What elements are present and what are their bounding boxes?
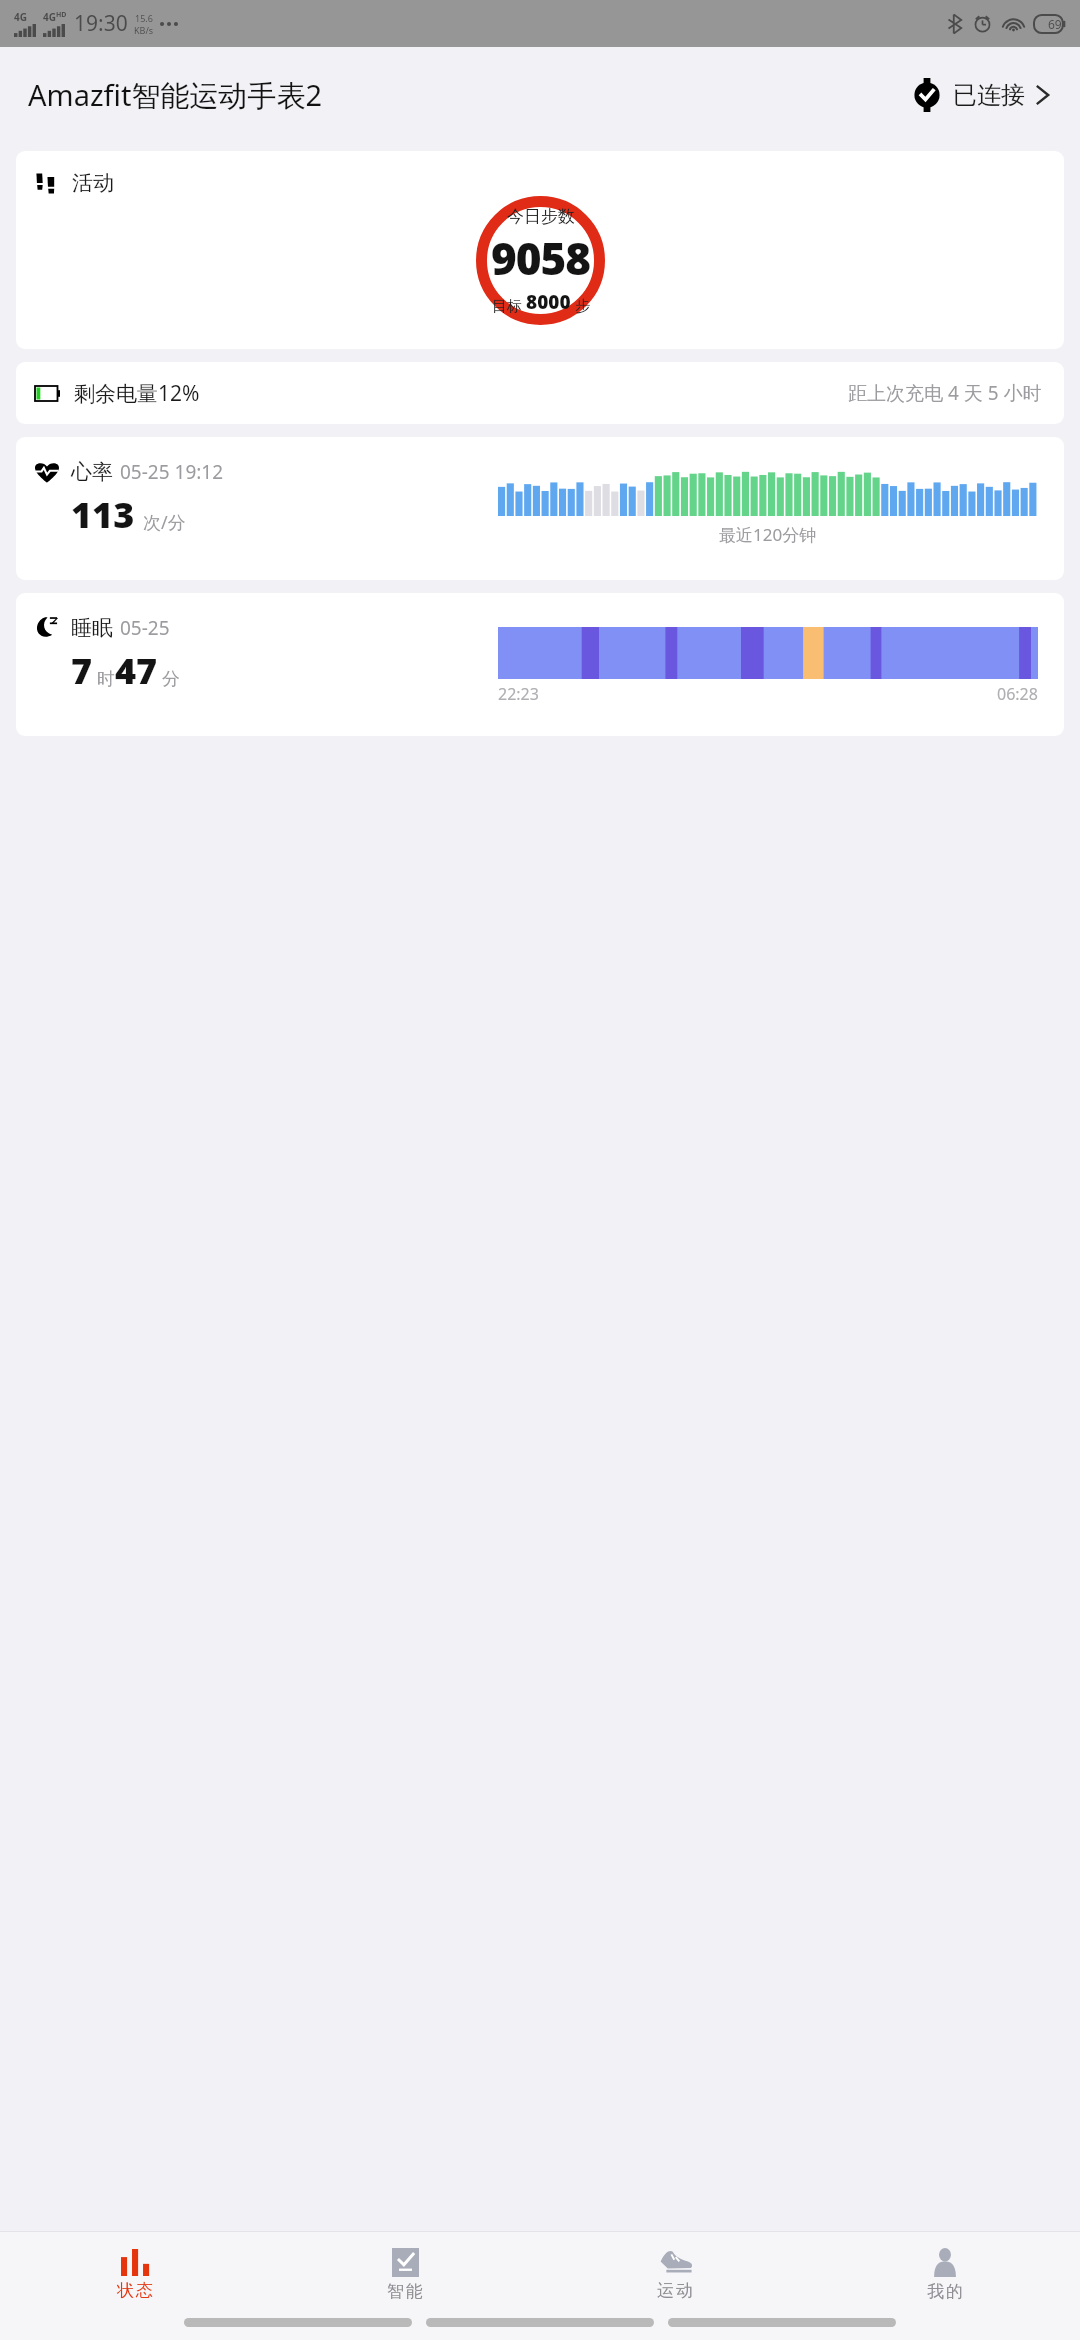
staticText: 已连接 xyxy=(953,80,1025,110)
button[interactable]: 我的 xyxy=(810,2232,1080,2318)
button[interactable]: 剩余电量12% xyxy=(16,362,1064,424)
staticText: 15.6 xyxy=(135,12,153,24)
staticText: 19:30 xyxy=(74,9,128,38)
staticText: 8000 xyxy=(526,289,571,315)
staticText: 活动 xyxy=(72,170,114,196)
staticText: 步 xyxy=(571,295,590,315)
staticText: 睡眠 xyxy=(71,615,113,641)
staticText: 目标 xyxy=(492,295,526,315)
button[interactable]: 睡眠 xyxy=(16,593,1064,736)
staticText: Amazfit智能运动手表2 xyxy=(28,75,323,115)
staticText: 7 xyxy=(71,646,93,695)
staticText: 智能 xyxy=(386,2281,424,2302)
staticText: 05-25 19:12 xyxy=(120,459,224,485)
staticText: 分 xyxy=(162,668,180,691)
staticText: 我的 xyxy=(926,2281,964,2302)
button[interactable]: 状态 xyxy=(0,2232,270,2318)
staticText: 113 xyxy=(71,490,135,539)
staticText: 05-25 xyxy=(120,615,170,641)
staticText: 69 xyxy=(1048,16,1062,32)
staticText: 剩余电量12% xyxy=(74,379,200,408)
staticText: 22:23 xyxy=(498,683,539,705)
staticText: HD xyxy=(56,10,67,20)
staticText: 运动 xyxy=(656,2280,694,2301)
staticText: 心率 xyxy=(71,459,113,485)
staticText: KB/s xyxy=(134,24,154,36)
staticText: 4G xyxy=(14,10,27,24)
staticText: 9058 xyxy=(491,228,591,288)
button[interactable]: 运动 xyxy=(540,2232,810,2318)
staticText: 4G xyxy=(43,10,56,24)
staticText: 06:28 xyxy=(997,683,1038,705)
staticText: 状态 xyxy=(116,2280,154,2301)
staticText: 47 xyxy=(115,646,158,695)
staticText: 时 xyxy=(97,668,115,691)
staticText: 次/分 xyxy=(143,510,186,535)
staticText: 距上次充电 4 天 5 小时 xyxy=(848,380,1042,406)
staticText: 今日步数 xyxy=(507,206,575,227)
button[interactable]: 已连接 xyxy=(904,72,1056,118)
button[interactable]: 活动 xyxy=(16,151,1064,349)
staticText: 最近120分钟 xyxy=(719,523,817,546)
button[interactable]: 心率 xyxy=(16,437,1064,580)
button[interactable]: 智能 xyxy=(270,2232,540,2318)
